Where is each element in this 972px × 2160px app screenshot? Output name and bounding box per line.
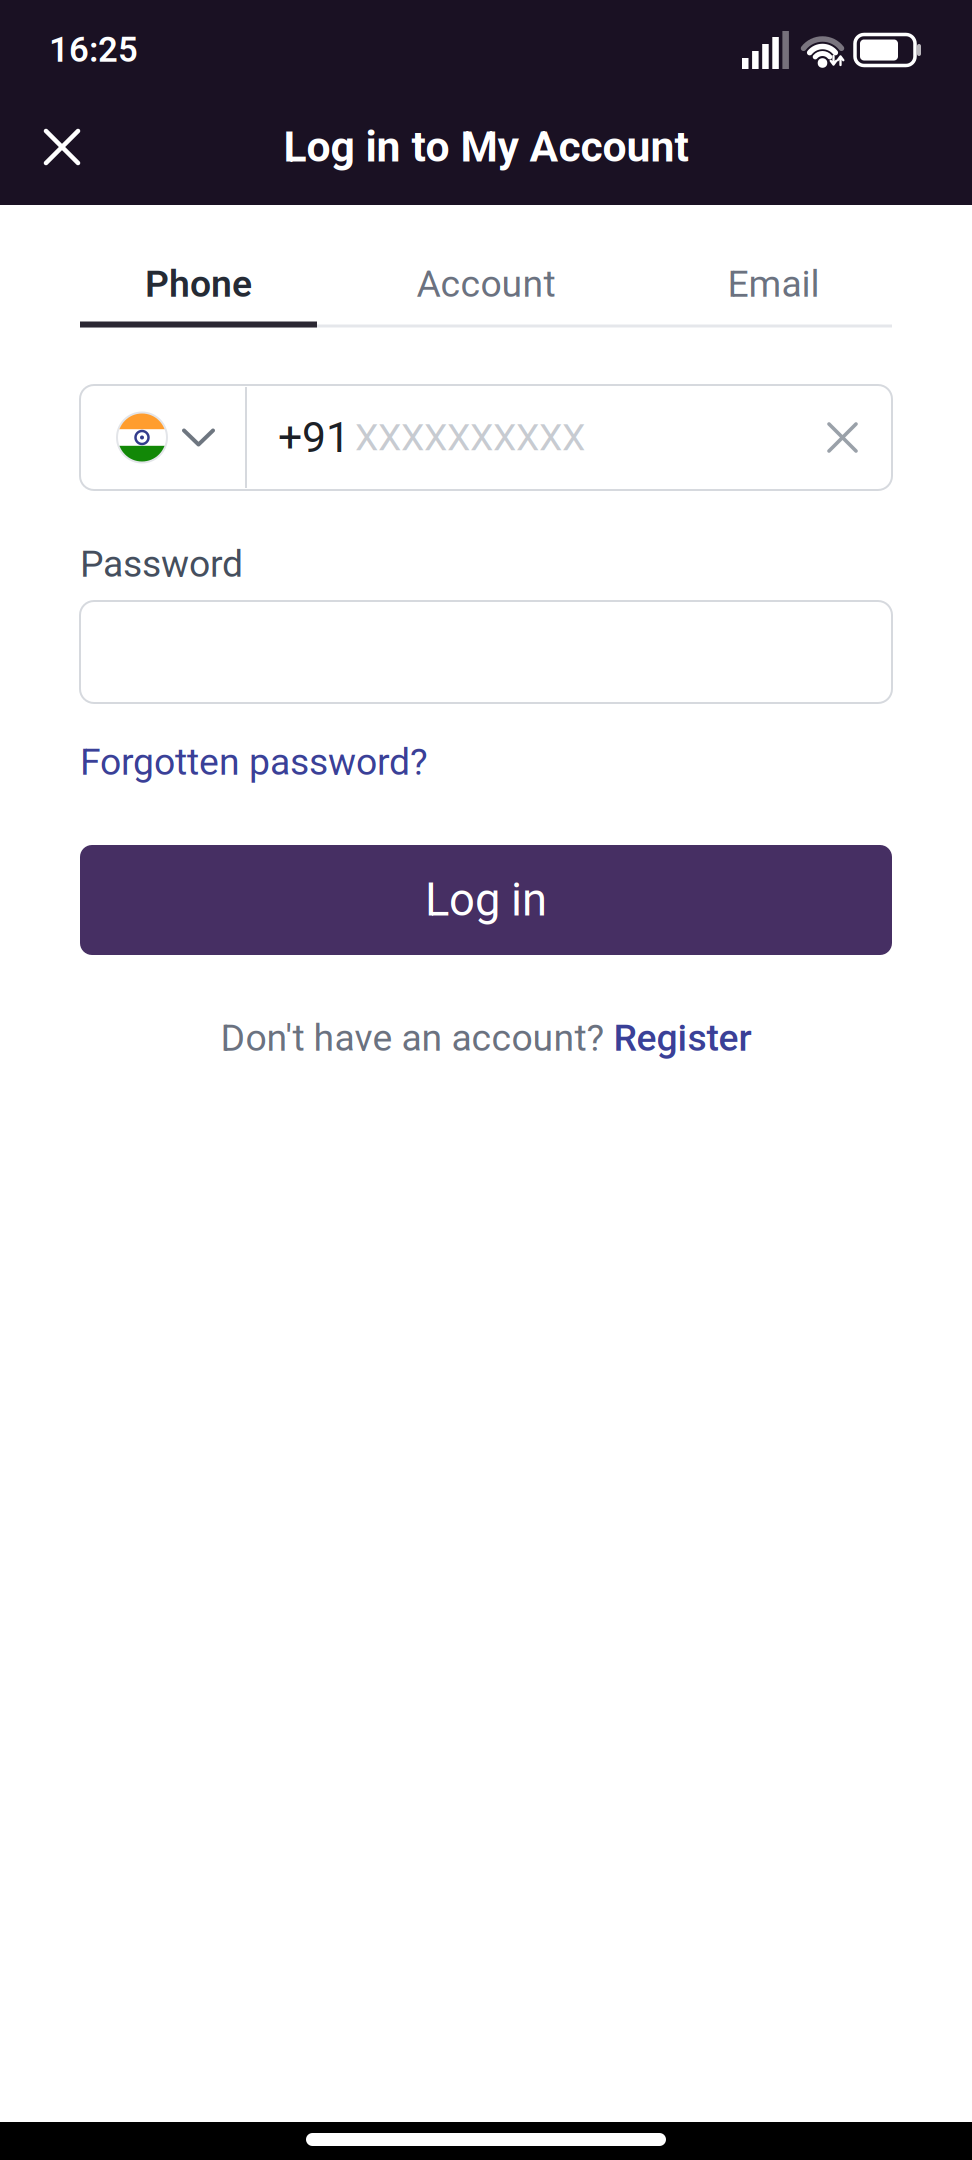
- staticText: Log in to My Account: [283, 123, 688, 171]
- button[interactable]: Close: [0, 111, 98, 183]
- staticText: Register: [613, 1017, 751, 1059]
- staticText: Don't have an account?: [220, 1017, 613, 1059]
- staticText: Account: [416, 263, 555, 305]
- staticText: 16:25: [49, 30, 138, 70]
- button[interactable]: Log in: [80, 845, 892, 955]
- button[interactable]: Email: [655, 249, 892, 319]
- staticText: Log in: [425, 874, 547, 926]
- staticText: Email: [727, 263, 819, 305]
- staticText: +91: [278, 413, 350, 462]
- staticText: Forgotten password?: [80, 741, 428, 783]
- button[interactable]: Phone: [80, 249, 317, 319]
- staticText: Password: [80, 543, 243, 585]
- button[interactable]: Select country code: [80, 387, 245, 488]
- staticText: Phone: [145, 263, 252, 305]
- button[interactable]: Clear phone number: [817, 424, 892, 451]
- staticText: XXXXXXXXXX: [355, 416, 585, 459]
- button[interactable]: Account: [317, 249, 655, 319]
- button[interactable]: Forgotten password?: [80, 738, 428, 786]
- button[interactable]: Register: [613, 1016, 751, 1060]
